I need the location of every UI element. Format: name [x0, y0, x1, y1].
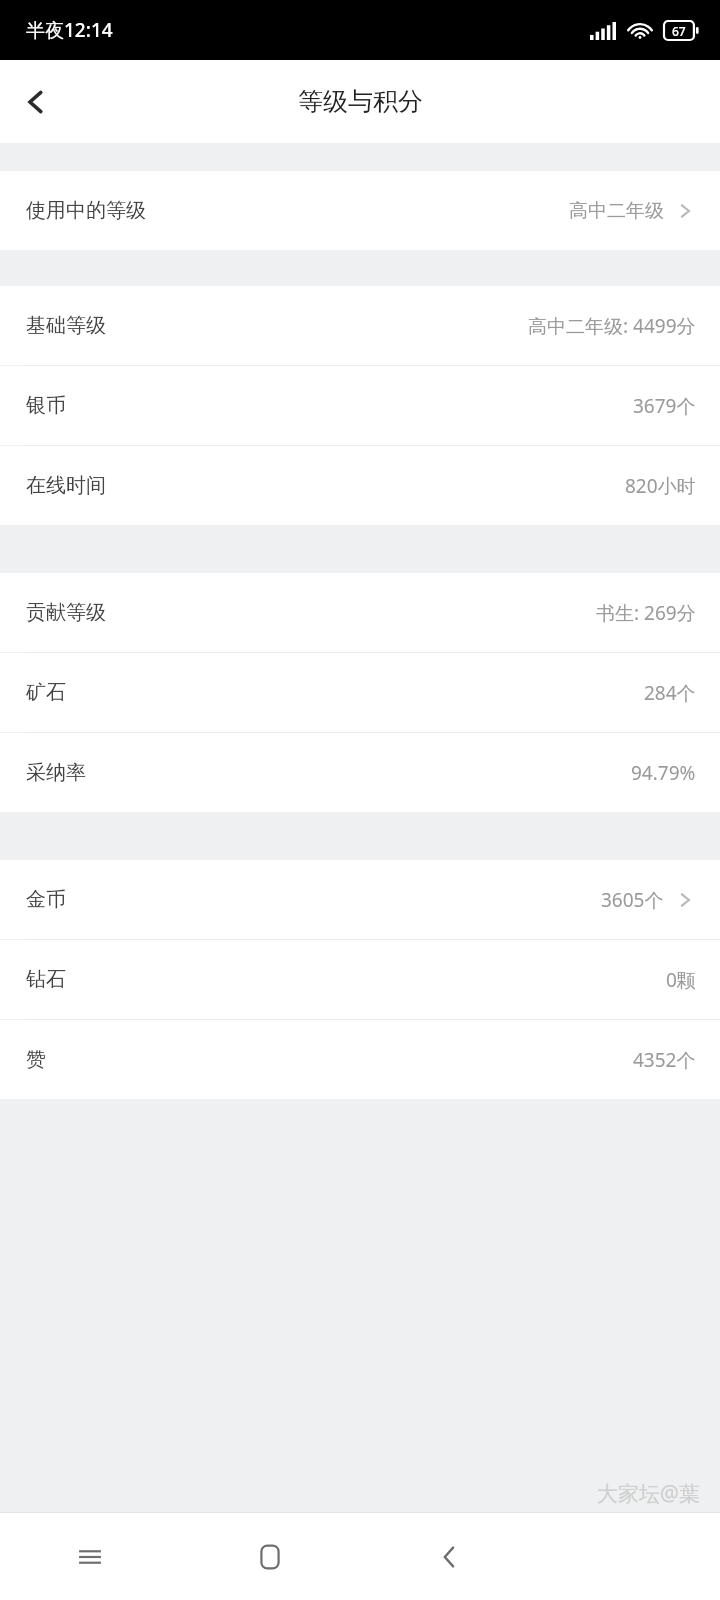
staticText: 采纳率	[26, 760, 86, 785]
staticText: 在线时间	[26, 473, 106, 498]
button[interactable]: 基础等级	[0, 286, 720, 365]
staticText: 高中二年级	[569, 199, 664, 223]
staticText: 金币	[26, 887, 66, 912]
staticText: 钻石	[26, 967, 66, 992]
staticText: 赞	[26, 1047, 46, 1072]
button[interactable]: 钻石	[0, 940, 720, 1019]
staticText: 银币	[26, 393, 66, 418]
staticText: 67	[672, 23, 686, 39]
staticText: 0颗	[666, 967, 696, 993]
button[interactable]: Back	[360, 1513, 540, 1600]
button[interactable]: Home	[180, 1513, 360, 1600]
staticText: 94.79%	[631, 760, 696, 786]
staticText: 半夜12:14	[26, 17, 113, 43]
button[interactable]: 在线时间	[0, 446, 720, 525]
staticText: 基础等级	[26, 313, 106, 338]
staticText: 大家坛@葉	[597, 1479, 700, 1508]
staticText: 4352个	[633, 1047, 696, 1073]
staticText: 书生: 269分	[596, 600, 696, 626]
staticText: 820小时	[625, 473, 696, 499]
button[interactable]: 矿石	[0, 653, 720, 732]
button[interactable]: 使用中的等级	[0, 171, 720, 250]
button[interactable]: 采纳率	[0, 733, 720, 812]
staticText: 3679个	[633, 393, 696, 419]
staticText: 使用中的等级	[26, 198, 146, 223]
staticText: 284个	[644, 680, 696, 706]
staticText: 等级与积分	[298, 86, 423, 117]
button[interactable]: 赞	[0, 1020, 720, 1099]
staticText: 矿石	[26, 680, 66, 705]
staticText: 高中二年级: 4499分	[528, 313, 696, 339]
button[interactable]: Back	[0, 66, 72, 138]
button[interactable]: 金币	[0, 860, 720, 939]
staticText: 贡献等级	[26, 600, 106, 625]
button[interactable]: 贡献等级	[0, 573, 720, 652]
staticText: 3605个	[601, 887, 664, 913]
button[interactable]: Recents	[0, 1513, 180, 1600]
button[interactable]: 银币	[0, 366, 720, 445]
